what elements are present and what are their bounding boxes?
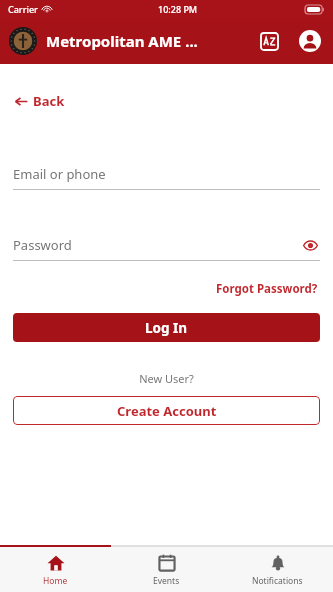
staticText: Forgot Password? bbox=[216, 281, 318, 297]
staticText: 10:28 PM bbox=[158, 3, 198, 15]
staticText: Password bbox=[13, 236, 72, 254]
button[interactable]: Show password bbox=[300, 235, 320, 255]
staticText: Metropolitan AME ... bbox=[46, 31, 198, 51]
button[interactable]: Translate bbox=[256, 28, 282, 54]
button[interactable]: Events bbox=[111, 547, 222, 592]
button[interactable]: Account bbox=[297, 28, 323, 54]
button[interactable]: Home bbox=[0, 547, 111, 592]
button[interactable]: Back bbox=[13, 89, 67, 113]
staticText: Carrier bbox=[8, 3, 38, 15]
staticText: New User? bbox=[0, 371, 333, 386]
staticText: Events bbox=[153, 575, 180, 587]
button[interactable]: Notifications bbox=[222, 547, 333, 592]
button[interactable]: Create Account bbox=[13, 396, 320, 425]
button[interactable]: Log In bbox=[13, 313, 320, 342]
button[interactable]: Forgot Password? bbox=[214, 279, 320, 299]
staticText: Email or phone bbox=[13, 165, 106, 183]
staticText: Log In bbox=[145, 319, 188, 337]
staticText: Home bbox=[43, 575, 68, 587]
staticText: Create Account bbox=[117, 402, 217, 420]
staticText: Notifications bbox=[252, 575, 303, 587]
staticText: Back bbox=[33, 92, 65, 110]
